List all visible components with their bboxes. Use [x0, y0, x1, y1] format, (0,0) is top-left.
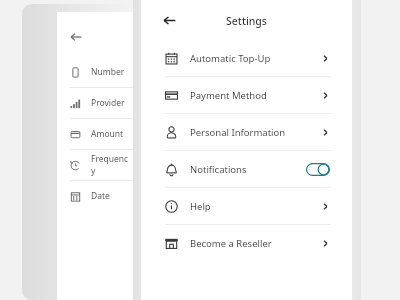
staticText: Automatic Top-Up [190, 52, 271, 65]
button[interactable]: Become a Reseller [141, 225, 352, 261]
staticText: Frequency [91, 153, 131, 177]
staticText: Amount [91, 128, 124, 140]
staticText: Number [91, 66, 125, 78]
staticText: Date [91, 190, 110, 202]
button[interactable]: Provider [57, 88, 139, 118]
button[interactable]: Help [141, 188, 352, 224]
button[interactable]: Frequency [57, 150, 139, 180]
button[interactable]: Back [157, 8, 181, 32]
button[interactable]: Number [57, 57, 139, 87]
button[interactable]: Date [57, 181, 139, 211]
button[interactable]: Personal Information [141, 114, 352, 150]
staticText: Help [190, 200, 211, 213]
button[interactable]: Notifications [141, 151, 352, 187]
staticText: Personal Information [190, 126, 286, 139]
button[interactable]: Notifications toggle [306, 163, 330, 176]
button[interactable]: Payment Method [141, 77, 352, 113]
staticText: Become a Reseller [190, 237, 272, 250]
staticText: Provider [91, 97, 125, 109]
button[interactable]: Amount [57, 119, 139, 149]
staticText: Payment Method [190, 89, 267, 102]
staticText: Settings [226, 14, 267, 28]
staticText: Notifications [190, 163, 247, 176]
button[interactable]: Automatic Top-Up [141, 40, 352, 76]
